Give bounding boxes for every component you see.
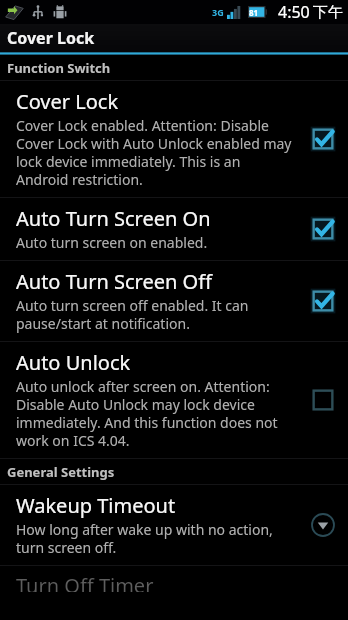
staticText: Cover Lock — [7, 27, 95, 49]
staticText: How long after wake up with no action, t… — [16, 520, 296, 557]
staticText: 下午 — [313, 3, 343, 22]
staticText: Auto Turn Screen On — [16, 205, 211, 232]
button[interactable]: Auto Turn Screen Off — [0, 261, 348, 341]
button[interactable]: Auto Turn Screen On — [0, 198, 348, 260]
staticText: Wakeup Timeout — [16, 492, 176, 519]
staticText: Function Switch — [7, 59, 111, 77]
button[interactable]: Wakeup Timeout — [0, 485, 348, 565]
button[interactable]: Checked — [304, 210, 342, 248]
button[interactable]: Checked — [304, 120, 342, 158]
staticText: Auto unlock after screen on. Attention: … — [16, 377, 296, 450]
button[interactable]: Checked — [304, 282, 342, 320]
staticText: Turn Off Timer — [16, 572, 154, 592]
staticText: Auto turn screen on enabled. — [16, 233, 208, 252]
button[interactable]: Auto Unlock — [0, 342, 348, 458]
staticText: Cover Lock enabled. Attention: Disable C… — [16, 116, 296, 189]
staticText: Auto Unlock — [16, 349, 131, 376]
button[interactable]: Cover Lock — [0, 81, 348, 197]
staticText: General Settings — [7, 463, 115, 481]
button[interactable]: Turn Off Timer — [0, 566, 348, 592]
button[interactable]: Open dropdown — [304, 506, 342, 544]
staticText: Auto Turn Screen Off — [16, 268, 212, 295]
staticText: 81 — [249, 7, 259, 18]
button[interactable]: Unchecked — [304, 381, 342, 419]
staticText: 4:50 — [278, 1, 310, 23]
staticText: 3G — [212, 6, 224, 18]
staticText: Auto turn screen off enabled. It can pau… — [16, 296, 296, 333]
staticText: Cover Lock — [16, 88, 119, 115]
